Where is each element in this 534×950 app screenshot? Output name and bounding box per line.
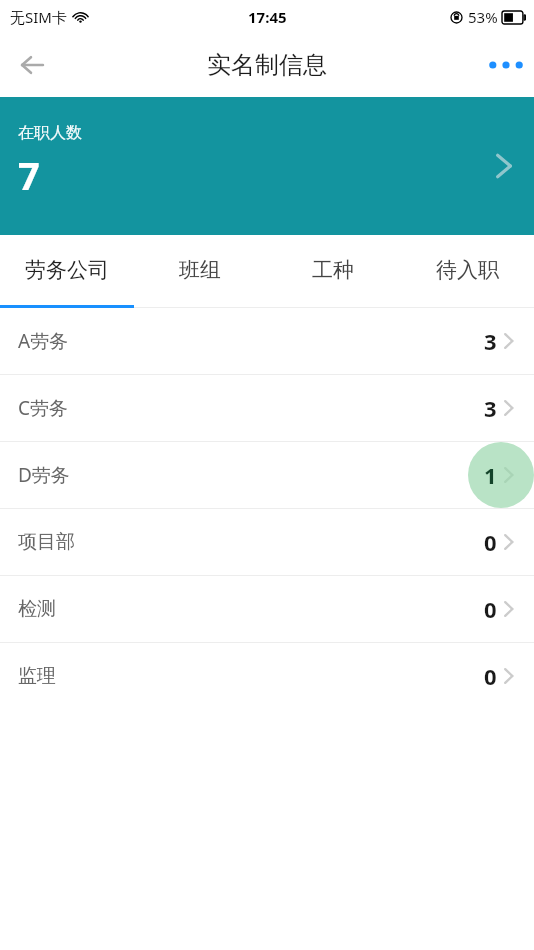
staticText: 待入职 <box>436 257 499 283</box>
staticText: 在职人数 <box>18 123 82 143</box>
staticText: D劳务 <box>18 462 70 488</box>
staticText: 劳务公司 <box>25 257 109 283</box>
button[interactable]: 检测 <box>0 576 534 642</box>
staticText: 3 <box>484 393 497 423</box>
staticText: 无SIM卡 <box>10 7 67 27</box>
button[interactable]: D劳务 <box>0 442 534 508</box>
button[interactable]: 项目部 <box>0 509 534 575</box>
button[interactable]: A劳务 <box>0 308 534 374</box>
staticText: 监理 <box>18 664 56 688</box>
staticText: 53% <box>468 7 498 27</box>
staticText: 7 <box>18 149 40 201</box>
staticText: 项目部 <box>18 530 75 554</box>
button[interactable]: 在职人数 <box>0 97 534 235</box>
staticText: C劳务 <box>18 395 69 421</box>
staticText: 0 <box>484 527 497 557</box>
button[interactable]: 劳务公司 <box>0 235 133 305</box>
staticText: 班组 <box>179 257 221 283</box>
button[interactable]: 班组 <box>133 235 266 305</box>
staticText: 0 <box>484 661 497 691</box>
button[interactable]: Back <box>8 41 56 89</box>
staticText: 0 <box>484 594 497 624</box>
staticText: 1 <box>484 460 497 490</box>
staticText: 工种 <box>312 257 354 283</box>
staticText: A劳务 <box>18 328 69 354</box>
staticText: 3 <box>484 326 497 356</box>
button[interactable]: 监理 <box>0 643 534 709</box>
button[interactable]: More options <box>480 41 532 89</box>
button[interactable]: 待入职 <box>400 235 534 305</box>
button[interactable]: 工种 <box>266 235 400 305</box>
staticText: 检测 <box>18 597 56 621</box>
staticText: 17:45 <box>248 7 287 27</box>
staticText: 实名制信息 <box>207 50 327 80</box>
button[interactable]: C劳务 <box>0 375 534 441</box>
